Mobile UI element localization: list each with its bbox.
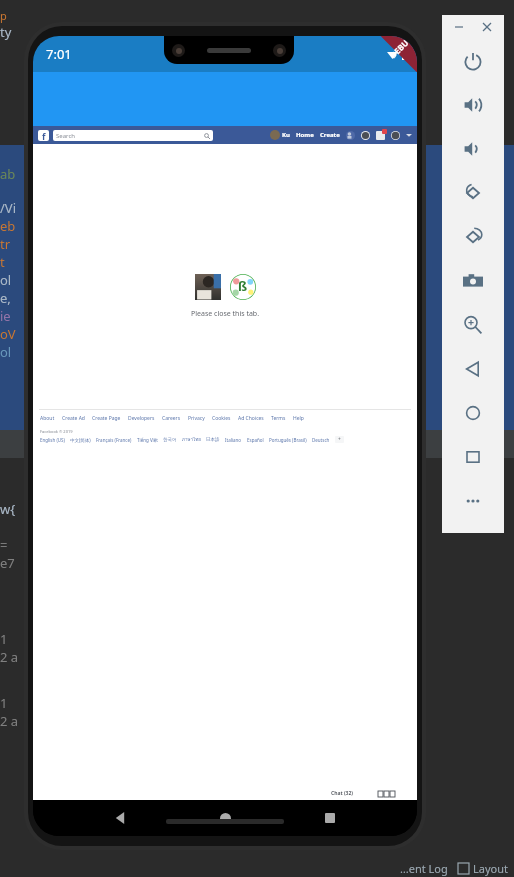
button[interactable]: Minimize [452,20,466,34]
staticText: ty [0,23,12,41]
staticText: Please close this tab. [191,309,260,319]
staticText: = [0,536,8,554]
button[interactable]: ภาษาไทย [182,436,201,443]
button[interactable]: Volume down [442,127,504,171]
button[interactable]: Español [247,437,264,443]
button[interactable]: Power [442,39,504,83]
button[interactable]: Ku [270,130,290,140]
button[interactable]: Back [102,800,138,836]
button[interactable]: Terms [271,415,286,422]
button[interactable]: Rotate right [442,215,504,259]
button[interactable]: 日本語 [206,437,220,443]
staticText: t [0,253,5,271]
button[interactable]: Tiếng Việt [137,437,158,443]
staticText: 1 [0,630,8,648]
other: Search [204,133,210,139]
button[interactable]: Messenger [361,131,370,140]
button[interactable]: Français (France) [96,437,132,443]
button[interactable]: Home [442,391,504,435]
button[interactable]: More [442,479,504,523]
staticText: 2 a [0,712,19,730]
staticText: Layout [473,861,508,876]
button[interactable]: Chat (32) [331,787,395,800]
staticText: e7 [0,554,15,572]
staticText: e, [0,289,11,307]
staticText: + [338,436,341,443]
button[interactable]: Back [442,347,504,391]
button[interactable]: About [40,415,55,422]
button[interactable]: Recent apps [312,800,348,836]
staticText: /Vi [0,199,16,217]
button[interactable]: Cookies [212,415,231,422]
button[interactable]: Home [296,131,314,139]
button[interactable]: Careers [162,415,181,422]
button[interactable]: Layout [458,861,508,876]
button[interactable]: Screenshot [442,259,504,303]
button[interactable]: Developers [128,415,155,422]
staticText: ol [0,343,12,361]
button[interactable]: Help [293,415,304,422]
staticText: 7:01 [46,45,72,63]
button[interactable]: Facebook home [38,130,49,141]
button[interactable]: Create Page [92,415,121,422]
button[interactable]: Rotate left [442,171,504,215]
staticText: Chat (32) [331,790,354,797]
button[interactable]: Create [320,131,340,139]
staticText: DEBUG [387,36,415,60]
button[interactable]: Zoom [442,303,504,347]
button[interactable]: 中文(简体) [70,437,91,443]
button[interactable]: Friend requests [346,131,355,140]
staticText: p [0,8,7,23]
other: Layout [458,863,469,874]
button[interactable]: Account menu [406,132,412,138]
staticText: Ku [282,131,290,139]
staticText: f [42,130,46,141]
button[interactable]: 한국어 [163,437,177,443]
staticText: ß [238,277,248,295]
staticText: 1 [0,694,8,712]
staticText: 2 a [0,648,19,666]
staticText: ol [0,271,12,289]
staticText: Facebook © 2019 [40,429,73,434]
button[interactable]: Overview [442,435,504,479]
button[interactable]: Search [56,130,210,141]
button[interactable]: Volume up [442,83,504,127]
button[interactable]: Photo [195,274,221,300]
button[interactable]: Notifications [376,131,385,140]
button[interactable]: Deutsch [312,437,330,443]
staticText: Search [56,132,75,140]
staticText: w{ [0,500,16,518]
button[interactable]: …ent Log [400,861,448,876]
staticText: ab [0,165,16,183]
staticText: eb [0,217,16,235]
button[interactable]: Português (Brasil) [269,437,307,443]
button[interactable]: Home [207,800,243,836]
button[interactable]: Page logo [230,274,256,300]
staticText: ie [0,307,11,325]
staticText: tr [0,235,11,253]
staticText: oV [0,325,16,343]
button[interactable]: Privacy [188,415,205,422]
button[interactable]: Create Ad [62,415,85,422]
button[interactable]: Help [391,131,400,140]
button[interactable]: English (US) [40,437,65,443]
button[interactable]: Italiano [225,437,242,443]
button[interactable]: Close [480,20,494,34]
button[interactable]: Ad Choices [238,415,264,422]
button[interactable]: More languages [335,436,344,443]
